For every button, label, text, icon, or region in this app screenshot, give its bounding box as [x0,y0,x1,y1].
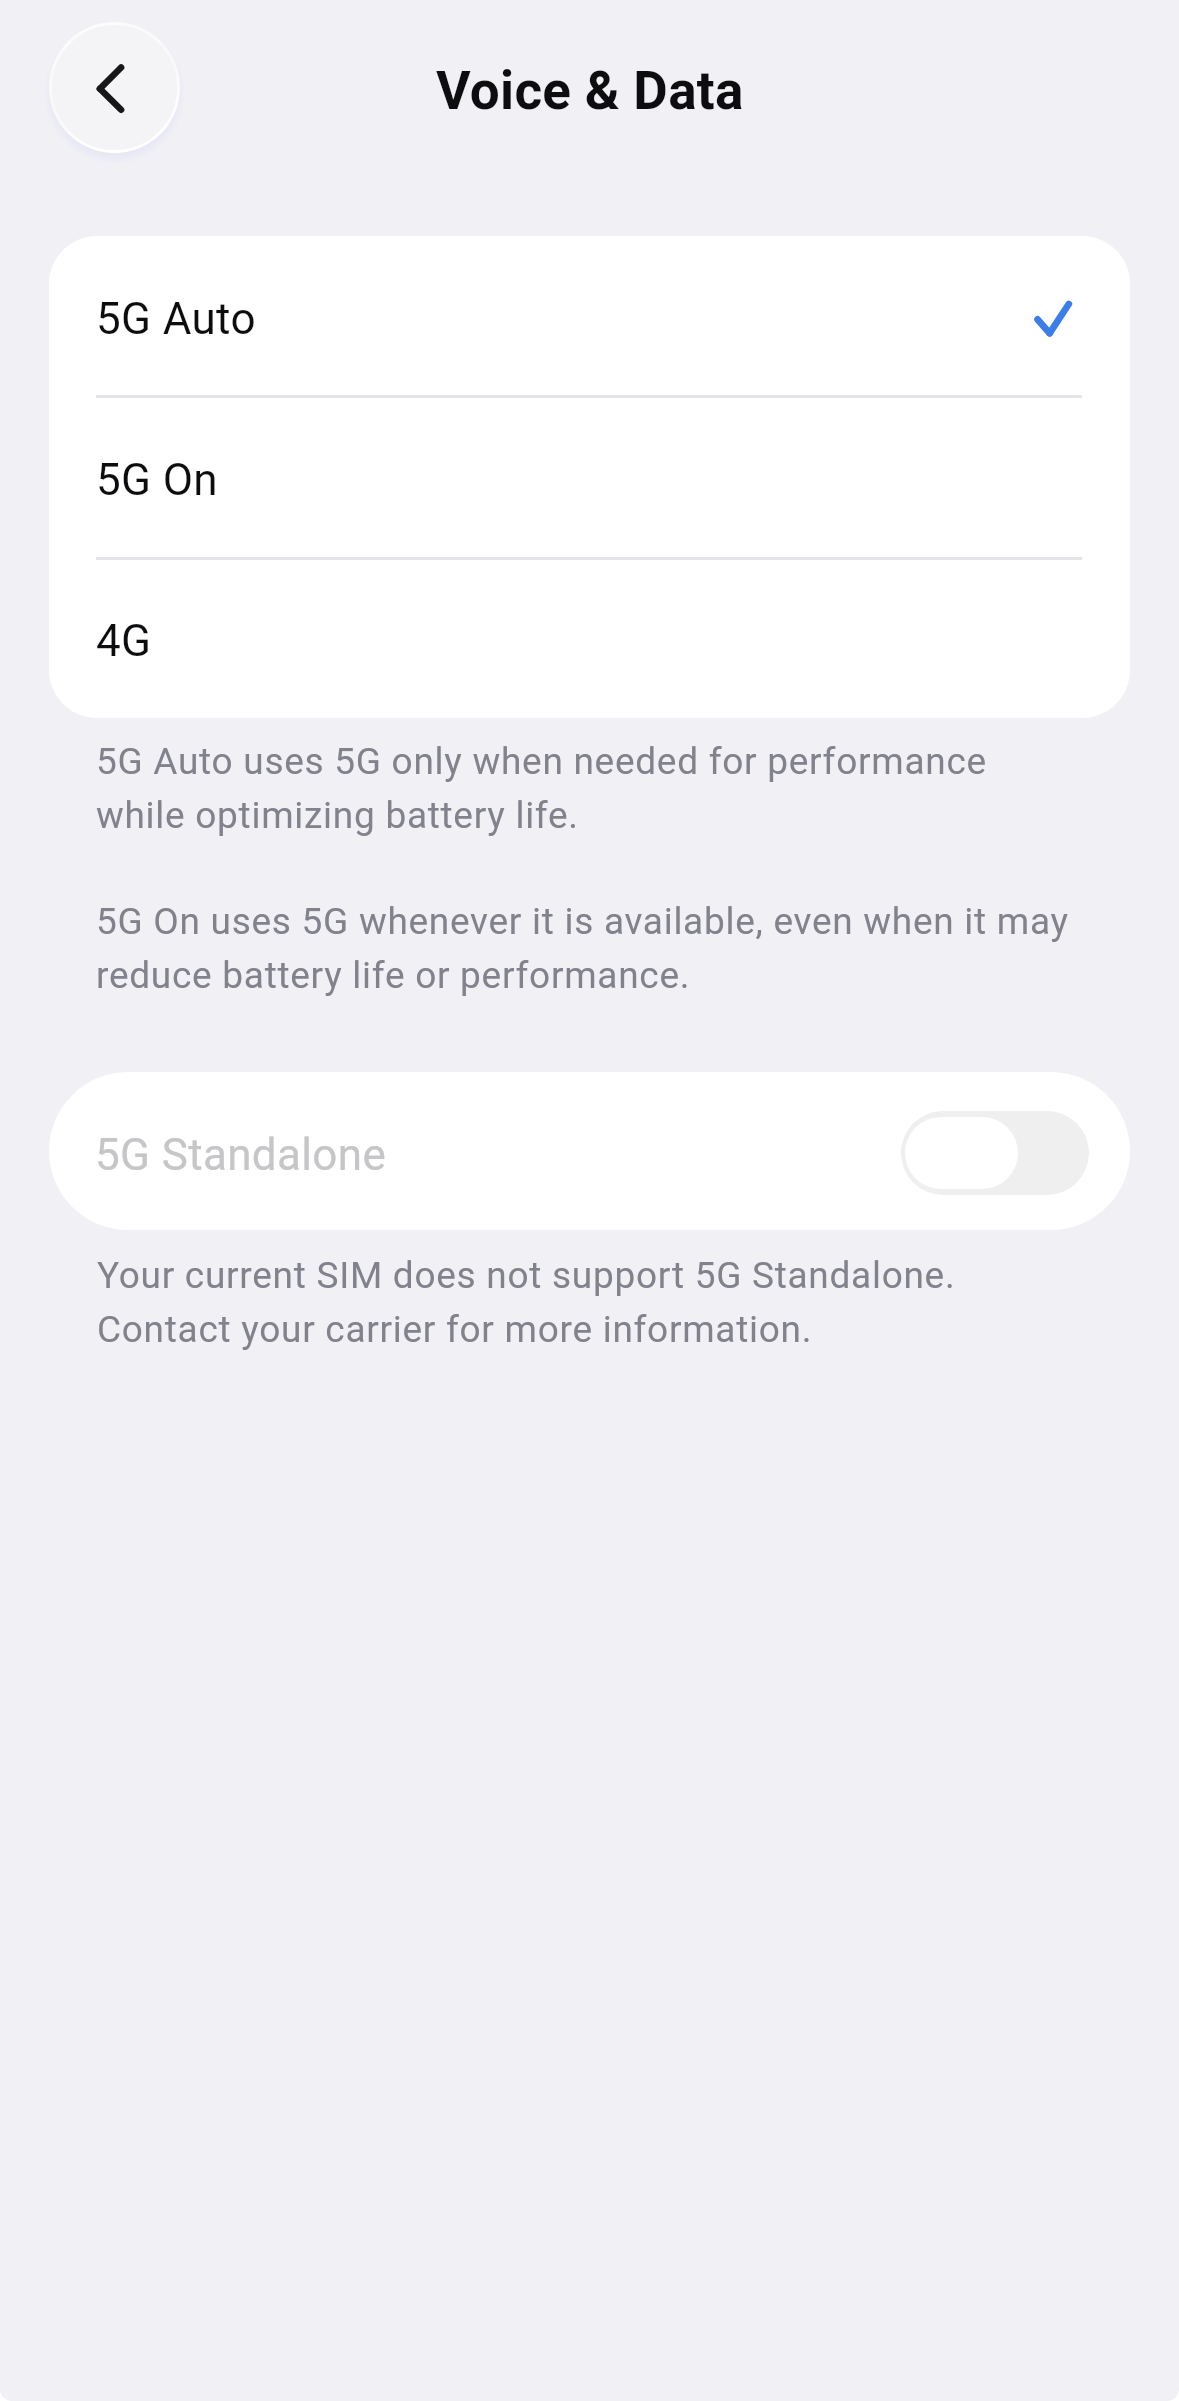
staticText: 5G Auto [96,293,256,345]
button[interactable]: 5G On [49,398,1130,557]
staticText: 5G On [96,454,218,506]
button[interactable]: 5G Standalone [49,1072,1130,1230]
staticText: 5G Auto uses 5G only when needed for per… [96,732,987,840]
staticText: Your current SIM does not support 5G Sta… [97,1246,956,1354]
button[interactable]: 5G Standalone switch, off [901,1111,1089,1195]
staticText: 5G On uses 5G whenever it is available, … [96,892,1069,1000]
staticText: 5G Standalone [95,1129,387,1181]
button[interactable]: 5G Auto [49,236,1130,395]
button[interactable]: 4G [49,560,1130,718]
button[interactable]: Back [49,22,180,153]
staticText: 4G [96,615,152,667]
staticText: Voice & Data [436,60,744,122]
